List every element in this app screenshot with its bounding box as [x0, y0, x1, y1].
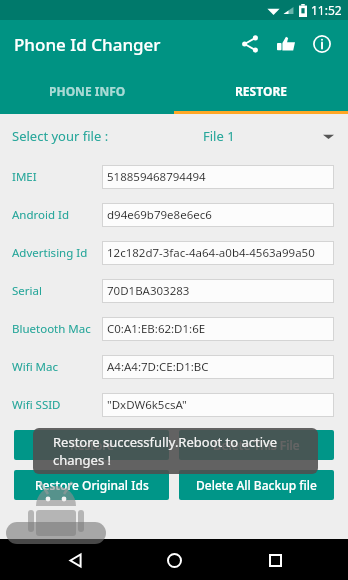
button[interactable]: Back [60, 545, 90, 575]
staticText: RESTORE [235, 83, 287, 99]
staticText: Wifi SSID [12, 397, 96, 413]
button[interactable]: Recent apps [260, 545, 290, 575]
button[interactable]: Share [232, 26, 268, 62]
staticText: d94e69b79e8e6ec6 [107, 207, 212, 223]
button[interactable]: d94e69b79e8e6ec6 [102, 203, 334, 227]
staticText: Delete This File [213, 437, 300, 453]
staticText: Advertising Id [12, 245, 96, 261]
button[interactable]: 70D1BA303283 [102, 279, 334, 303]
button[interactable]: Info [304, 26, 340, 62]
staticText: Phone Id Changer [14, 33, 161, 56]
staticText: IMEI [12, 169, 96, 185]
staticText: Bluetooth Mac [12, 321, 96, 337]
button[interactable]: Restore Original Ids [14, 470, 169, 500]
staticText: 518859468794494 [107, 169, 206, 185]
staticText: Restore [70, 437, 114, 453]
button[interactable]: Rate this app [268, 26, 304, 62]
staticText: Wifi Mac [12, 359, 96, 375]
staticText: Select your file : [12, 127, 109, 145]
staticText: Android Id [12, 207, 96, 223]
button[interactable]: 518859468794494 [102, 165, 334, 189]
button[interactable]: PHONE INFO [0, 68, 174, 114]
button[interactable]: Delete This File [179, 430, 334, 460]
staticText: Restore Original Ids [35, 477, 149, 493]
staticText: A4:A4:7D:CE:D1:BC [107, 359, 209, 375]
button[interactable]: File 1 [203, 127, 334, 145]
button[interactable]: C0:A1:EB:62:D1:6E [102, 317, 334, 341]
button[interactable]: Restore [14, 430, 169, 460]
staticText: PHONE INFO [49, 83, 126, 99]
staticText: File 1 [203, 127, 235, 145]
staticText: C0:A1:EB:62:D1:6E [107, 321, 206, 337]
button[interactable]: 12c182d7-3fac-4a64-a0b4-4563a99a50 [102, 241, 334, 265]
staticText: 12c182d7-3fac-4a64-a0b4-4563a99a50 [107, 245, 315, 261]
staticText: Restore successfully.Reboot to active ch… [53, 433, 302, 469]
staticText: 11:52 [311, 2, 342, 18]
staticText: "DxDW6k5csA" [107, 397, 187, 413]
staticText: Delete All Backup file [196, 477, 317, 493]
button[interactable]: Home [159, 545, 189, 575]
button[interactable]: A4:A4:7D:CE:D1:BC [102, 355, 334, 379]
button[interactable]: RESTORE [174, 68, 348, 114]
staticText: Serial [12, 283, 96, 299]
staticText: 70D1BA303283 [107, 283, 190, 299]
button[interactable]: Delete All Backup file [179, 470, 334, 500]
button[interactable]: "DxDW6k5csA" [102, 393, 334, 417]
